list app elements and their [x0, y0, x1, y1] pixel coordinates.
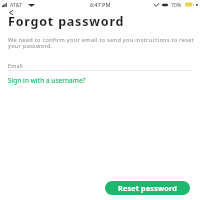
staticText: Forgot password: [8, 13, 125, 30]
staticText: 70%: [171, 1, 182, 8]
staticText: AT&T: [10, 1, 23, 8]
staticText: 6:47 PM: [90, 1, 111, 8]
staticText: Reset password: [118, 183, 178, 193]
staticText: We need to confirm your email to send yo…: [8, 36, 198, 50]
staticText: Email: [8, 62, 23, 69]
button[interactable]: Reset password: [105, 181, 190, 195]
button[interactable]: Email: [8, 59, 192, 71]
button[interactable]: Back: [4, 6, 17, 19]
staticText: Sign in with a username?: [8, 76, 86, 85]
button[interactable]: Sign in with a username?: [8, 73, 86, 84]
